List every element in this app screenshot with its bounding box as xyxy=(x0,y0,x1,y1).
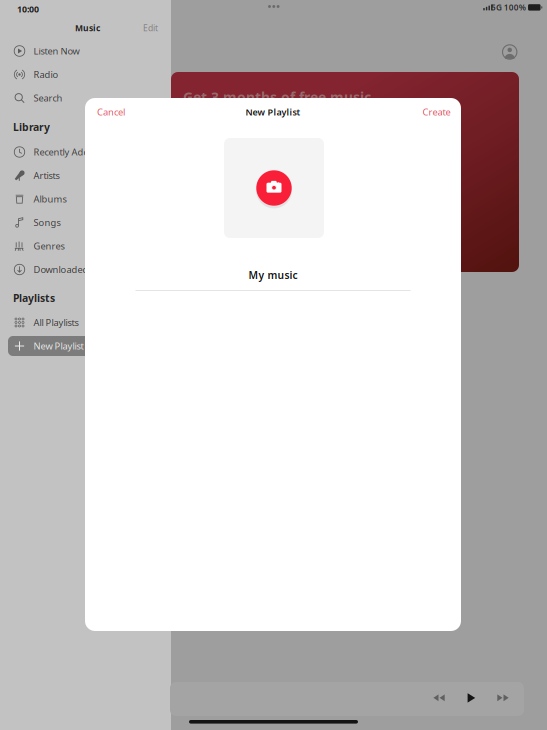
staticText: New Playlist xyxy=(34,340,84,352)
button[interactable]: All Playlists xyxy=(8,312,161,332)
staticText: Recently Added xyxy=(34,146,101,158)
button[interactable]: Artists xyxy=(8,165,161,185)
button[interactable]: Play xyxy=(461,692,481,708)
staticText: Cancel xyxy=(97,106,125,118)
staticText: 5G xyxy=(491,2,502,13)
staticText: Artists xyxy=(34,169,60,182)
staticText: Create xyxy=(422,106,450,118)
staticText: Listen Now xyxy=(34,45,80,57)
button[interactable]: Edit xyxy=(143,21,167,35)
staticText: Library xyxy=(13,120,50,134)
staticText: Songs xyxy=(34,216,61,229)
staticText: Genres xyxy=(34,240,65,252)
staticText: 10:00 xyxy=(17,3,39,15)
staticText: Edit xyxy=(143,22,158,34)
button[interactable]: Fast forward xyxy=(492,692,512,708)
button[interactable]: Genres xyxy=(8,236,161,256)
staticText: Get 3 months of free music xyxy=(183,88,371,106)
button[interactable]: Rewind xyxy=(429,692,449,708)
button[interactable]: New Playlist xyxy=(8,336,161,356)
staticText: 100% xyxy=(504,2,526,13)
staticText: All Playlists xyxy=(34,316,79,329)
button[interactable]: Cancel xyxy=(97,102,137,122)
button[interactable]: Recently Added xyxy=(8,142,161,162)
button[interactable]: Add playlist artwork xyxy=(224,138,324,238)
staticText: Downloaded xyxy=(34,263,89,276)
button[interactable]: Radio xyxy=(8,64,161,84)
button[interactable]: Downloaded xyxy=(8,259,161,279)
staticText: Music xyxy=(75,22,100,34)
button[interactable]: Search xyxy=(8,88,161,108)
staticText: Playlists xyxy=(13,291,55,305)
staticText: My music xyxy=(248,268,297,282)
button[interactable]: Create xyxy=(410,102,450,122)
button[interactable]: Listen Now xyxy=(8,41,161,61)
button[interactable]: Songs xyxy=(8,212,161,232)
button[interactable]: Albums xyxy=(8,189,161,209)
staticText: Radio xyxy=(34,68,59,81)
staticText: Albums xyxy=(34,193,67,205)
button[interactable]: Account xyxy=(499,41,521,63)
staticText: New Playlist xyxy=(245,106,300,118)
staticText: Search xyxy=(34,92,63,104)
